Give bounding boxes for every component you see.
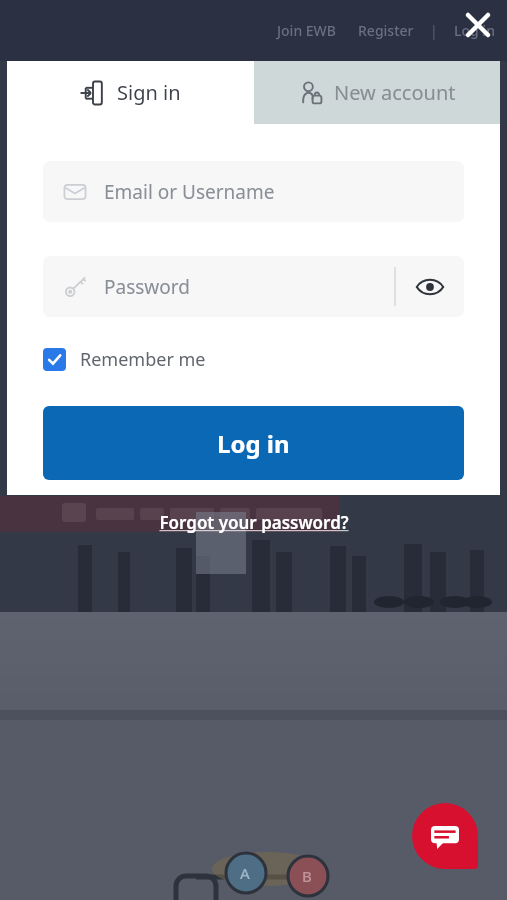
button[interactable]: Password xyxy=(43,256,464,317)
staticText: New account xyxy=(334,79,456,106)
staticText: Sign in xyxy=(117,79,181,106)
staticText: Log in xyxy=(217,427,290,460)
staticText: A xyxy=(240,863,250,883)
button[interactable]: Show password xyxy=(395,256,464,317)
button[interactable]: Log in xyxy=(454,15,495,46)
staticText: Register xyxy=(358,21,414,40)
staticText: Password xyxy=(104,274,395,300)
button[interactable]: Register xyxy=(358,15,414,46)
button[interactable]: Email or Username xyxy=(43,161,464,222)
staticText: Log in xyxy=(454,21,495,40)
button[interactable]: New account xyxy=(254,61,500,124)
staticText: B xyxy=(302,866,312,886)
button[interactable]: Forgot your password? xyxy=(151,507,357,538)
staticText: Forgot your password? xyxy=(159,511,349,534)
staticText: Remember me xyxy=(80,347,206,372)
button[interactable]: Chat xyxy=(412,803,478,869)
button[interactable]: Join EWB xyxy=(277,15,336,46)
button[interactable]: Sign in xyxy=(7,61,254,124)
button[interactable]: Log in xyxy=(43,406,464,480)
button[interactable]: Close xyxy=(457,4,499,46)
staticText: Join EWB xyxy=(277,21,336,40)
staticText: | xyxy=(430,21,438,40)
button[interactable]: Remember me xyxy=(43,345,216,374)
staticText: Email or Username xyxy=(104,179,464,205)
